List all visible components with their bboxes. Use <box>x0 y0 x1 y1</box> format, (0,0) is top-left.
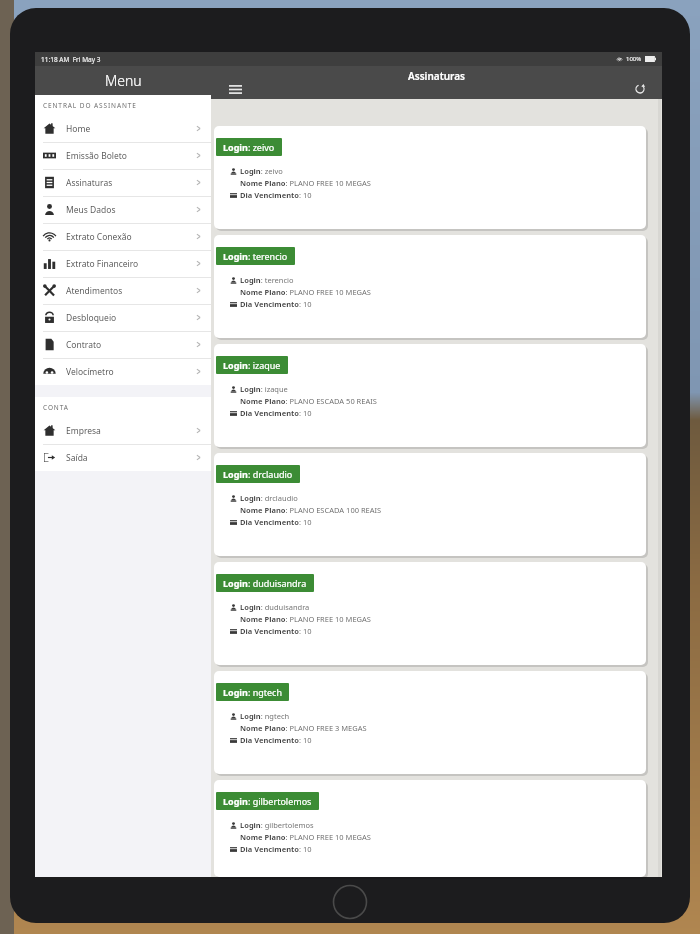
staticText: Login: izaque <box>223 359 281 371</box>
staticText: Dia Vencimento: 10 <box>240 735 312 745</box>
button[interactable]: Contrato <box>35 331 211 358</box>
staticText: Contrato <box>66 339 102 351</box>
staticText: CONTA <box>43 403 69 412</box>
staticText: Login: ngtech <box>223 686 282 698</box>
staticText: Velocímetro <box>66 366 114 378</box>
button[interactable]: Home <box>35 115 211 142</box>
staticText: Menu <box>105 71 142 90</box>
staticText: Atendimentos <box>66 285 123 297</box>
staticText: Nome Plano: PLANO FREE 3 MEGAS <box>240 723 367 733</box>
button[interactable]: Login: izaque <box>214 344 646 447</box>
staticText: Login: gilbertolemos <box>223 795 312 807</box>
button[interactable]: Saída <box>35 444 211 471</box>
button[interactable]: Login: ngtech <box>214 671 646 774</box>
button[interactable]: Login: gilbertolemos <box>214 780 646 877</box>
staticText: Home <box>66 123 91 135</box>
button[interactable]: Extrato Conexão <box>35 223 211 250</box>
staticText: Nome Plano: PLANO ESCADA 50 REAIS <box>240 396 377 406</box>
button[interactable]: Login: terencio <box>214 235 646 338</box>
button[interactable]: Empresa <box>35 417 211 444</box>
staticText: Login: drclaudio <box>223 468 293 480</box>
staticText: Empresa <box>66 425 101 437</box>
staticText: Assinaturas <box>66 177 113 189</box>
staticText: Nome Plano: PLANO FREE 10 MEGAS <box>240 832 371 842</box>
button[interactable]: Desbloqueio <box>35 304 211 331</box>
staticText: Login: zeivo <box>223 141 275 153</box>
staticText: Dia Vencimento: 10 <box>240 626 312 636</box>
staticText: Nome Plano: PLANO FREE 10 MEGAS <box>240 287 371 297</box>
staticText: Login: terencio <box>223 250 288 262</box>
staticText: Saída <box>66 452 88 464</box>
staticText: Extrato Conexão <box>66 231 132 243</box>
staticText: 11:18 AM Fri May 3 <box>41 55 101 64</box>
staticText: Dia Vencimento: 10 <box>240 844 312 854</box>
staticText: Login: izaque <box>240 384 288 394</box>
button[interactable]: Login: drclaudio <box>214 453 646 556</box>
staticText: Extrato Financeiro <box>66 258 139 270</box>
button[interactable]: Assinaturas <box>35 169 211 196</box>
staticText: Login: gilbertolemos <box>240 820 314 830</box>
staticText: Dia Vencimento: 10 <box>240 299 312 309</box>
button[interactable]: Extrato Financeiro <box>35 250 211 277</box>
staticText: Dia Vencimento: 10 <box>240 517 312 527</box>
staticText: Login: zeivo <box>240 166 283 176</box>
staticText: Login: ngtech <box>240 711 290 721</box>
button[interactable]: Velocímetro <box>35 358 211 385</box>
staticText: Dia Vencimento: 10 <box>240 408 312 418</box>
button[interactable]: Login: zeivo <box>214 126 646 229</box>
staticText: Login: terencio <box>240 275 294 285</box>
staticText: Nome Plano: PLANO FREE 10 MEGAS <box>240 178 371 188</box>
button[interactable]: Menu <box>225 79 245 99</box>
button[interactable]: Refresh <box>630 79 650 99</box>
staticText: Assinaturas <box>408 69 465 83</box>
staticText: Nome Plano: PLANO ESCADA 100 REAIS <box>240 505 382 515</box>
staticText: Meus Dados <box>66 204 116 216</box>
staticText: CENTRAL DO ASSINANTE <box>43 101 137 110</box>
staticText: Login: duduisandra <box>223 577 307 589</box>
staticText: Login: duduisandra <box>240 602 310 612</box>
button[interactable]: Login: duduisandra <box>214 562 646 665</box>
staticText: 100% <box>626 55 642 63</box>
staticText: Login: drclaudio <box>240 493 298 503</box>
button[interactable]: Emissão Boleto <box>35 142 211 169</box>
button[interactable]: Meus Dados <box>35 196 211 223</box>
staticText: Dia Vencimento: 10 <box>240 190 312 200</box>
button[interactable]: Atendimentos <box>35 277 211 304</box>
staticText: Desbloqueio <box>66 312 117 324</box>
staticText: Emissão Boleto <box>66 150 127 162</box>
staticText: Nome Plano: PLANO FREE 10 MEGAS <box>240 614 371 624</box>
